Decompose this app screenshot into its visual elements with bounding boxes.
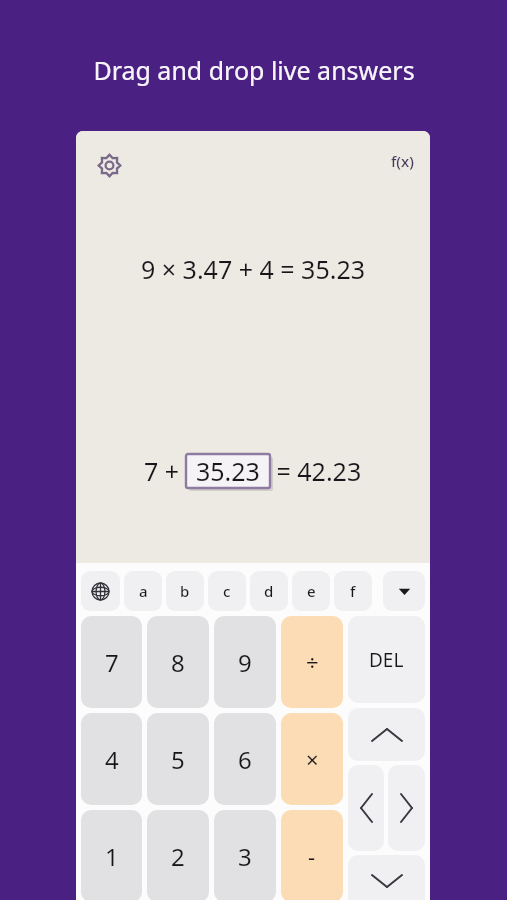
staticText: b — [180, 581, 190, 601]
button[interactable]: × — [281, 713, 343, 805]
staticText: f(x) — [391, 151, 414, 171]
button[interactable]: More — [383, 571, 425, 611]
staticText: e — [307, 581, 316, 601]
button[interactable]: 35.23 — [186, 454, 270, 488]
button[interactable]: Settings — [90, 146, 128, 184]
staticText: 9 — [238, 646, 252, 679]
staticText: 5 — [171, 743, 185, 776]
button[interactable]: Left — [348, 765, 384, 851]
button[interactable]: 2 — [147, 810, 209, 900]
staticText: - — [308, 841, 316, 871]
button[interactable]: f — [334, 571, 372, 611]
button[interactable]: d — [250, 571, 288, 611]
button[interactable]: 3 — [214, 810, 276, 900]
staticText: d — [264, 581, 274, 601]
staticText: 7 — [105, 646, 119, 679]
button[interactable]: 9 — [214, 616, 276, 708]
button[interactable]: Right — [388, 765, 425, 851]
staticText: 3 — [238, 840, 252, 873]
staticText: a — [139, 581, 148, 601]
staticText: 7 + — [144, 454, 186, 488]
staticText: 6 — [238, 743, 252, 776]
button[interactable]: a — [124, 571, 162, 611]
button[interactable]: 6 — [214, 713, 276, 805]
button[interactable]: c — [208, 571, 246, 611]
button[interactable]: 4 — [81, 713, 142, 805]
staticText: 4 — [105, 743, 119, 776]
staticText: 2 — [171, 840, 185, 873]
staticText: 9 × 3.47 + 4 = 35.23 — [141, 252, 366, 286]
staticText: × — [306, 744, 319, 774]
button[interactable]: 7 — [81, 616, 142, 708]
button[interactable]: ÷ — [281, 616, 343, 708]
staticText: DEL — [369, 647, 404, 673]
button[interactable]: Language — [81, 571, 120, 611]
button[interactable]: 8 — [147, 616, 209, 708]
staticText: = 42.23 — [270, 454, 362, 488]
button[interactable]: Down — [348, 855, 425, 900]
staticText: c — [223, 581, 231, 601]
button[interactable]: b — [166, 571, 204, 611]
button[interactable]: DEL — [348, 616, 425, 703]
staticText: 1 — [105, 840, 119, 873]
button[interactable]: f(x) — [385, 147, 420, 175]
button[interactable]: e — [292, 571, 330, 611]
staticText: f — [350, 581, 356, 601]
button[interactable]: 1 — [81, 810, 142, 900]
button[interactable]: Up — [348, 708, 425, 761]
staticText: 35.23 — [196, 454, 260, 488]
button[interactable]: 5 — [147, 713, 209, 805]
staticText: 8 — [171, 646, 185, 679]
staticText: Drag and drop live answers — [93, 53, 415, 87]
button[interactable]: - — [281, 810, 343, 900]
staticText: ÷ — [306, 647, 319, 677]
